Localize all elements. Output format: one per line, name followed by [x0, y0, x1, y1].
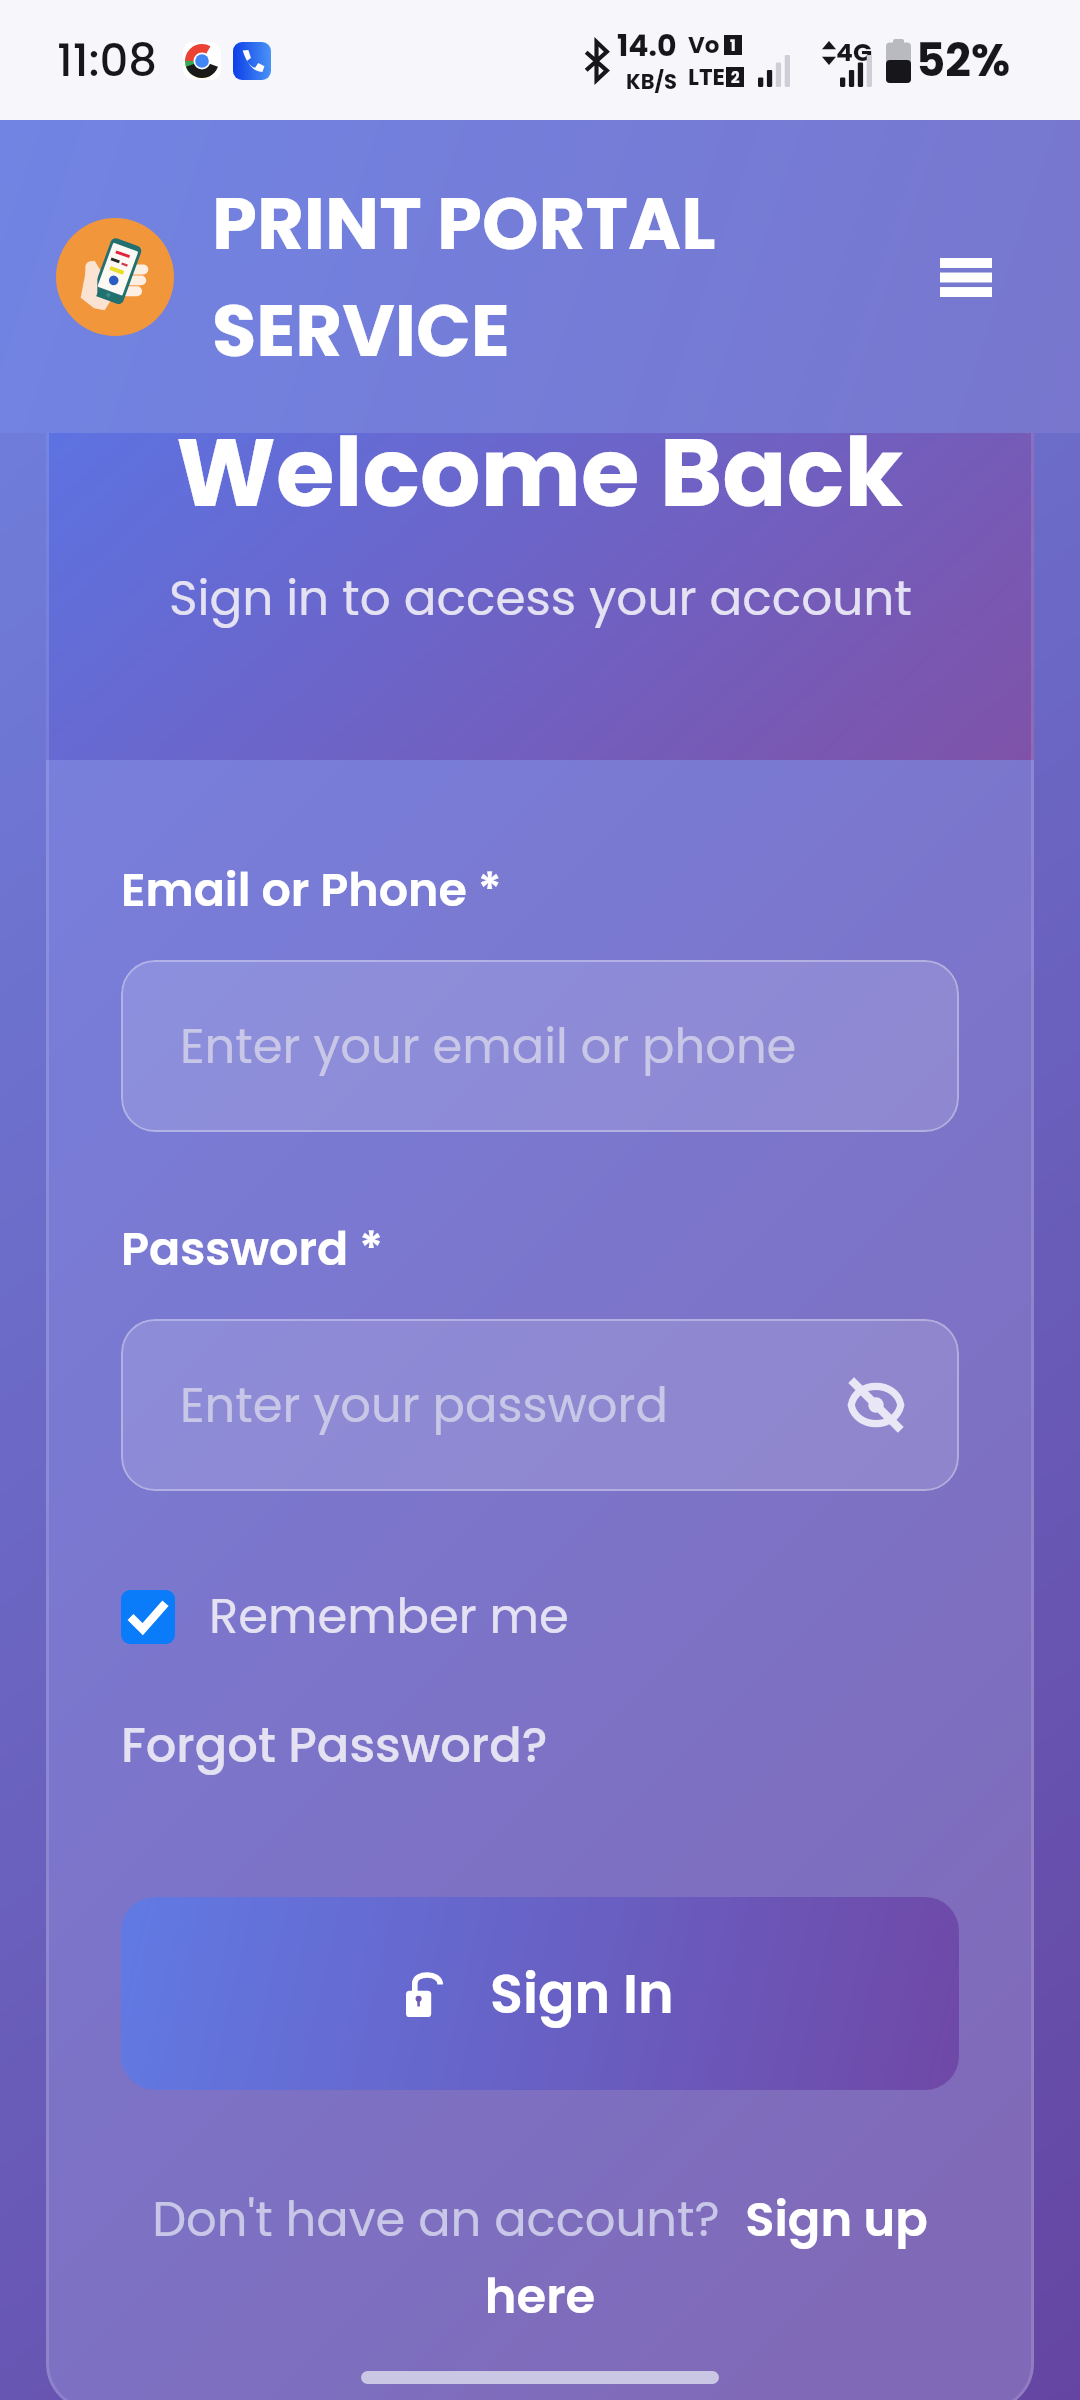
staticText: Email or Phone *: [121, 858, 502, 922]
staticText: Remember me: [209, 1583, 569, 1650]
button[interactable]: Don't have an account? Sign up here: [121, 2186, 959, 2330]
button[interactable]: Enter your email or phone: [121, 960, 959, 1132]
staticText: 2: [731, 67, 740, 87]
button[interactable]: Enter your password: [121, 1319, 959, 1491]
staticText: 1: [730, 35, 736, 55]
staticText: KB/S: [626, 67, 677, 96]
staticText: Vo: [688, 29, 720, 61]
staticText: Sign in to access your account: [169, 564, 912, 632]
staticText: PRINT PORTAL SERVICE: [212, 173, 911, 381]
staticText: Welcome Back: [176, 406, 904, 539]
button[interactable]: Forgot Password?: [121, 1712, 548, 1779]
staticText: Enter your email or phone: [180, 1013, 797, 1080]
staticText: Enter your password: [180, 1372, 668, 1439]
button[interactable]: Menu: [911, 222, 1021, 332]
staticText: Sign In: [490, 1956, 674, 2032]
button[interactable]: Remember me: [121, 1583, 569, 1650]
staticText: Don't have an account? Sign up here: [121, 2186, 959, 2330]
staticText: LTE: [688, 61, 726, 93]
staticText: 14.0: [617, 25, 677, 67]
staticText: 52%: [916, 29, 1011, 92]
staticText: 11:08: [57, 29, 158, 92]
staticText: Password *: [121, 1217, 384, 1281]
staticText: Forgot Password?: [121, 1712, 548, 1779]
button[interactable]: Sign In: [121, 1897, 959, 2090]
staticText: 4G: [836, 35, 872, 70]
button[interactable]: Show password: [841, 1370, 911, 1440]
